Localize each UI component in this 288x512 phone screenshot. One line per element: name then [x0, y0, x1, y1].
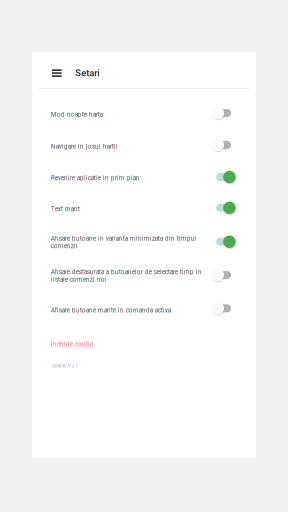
button[interactable]: Text marit	[32, 192, 256, 223]
button[interactable]: Afisare desfasurata a butoanelor de sele…	[32, 260, 256, 295]
staticText: Text marit	[51, 205, 80, 213]
staticText: Afisare butoane in varianta minimizata d…	[51, 235, 197, 250]
staticText: Navigare in josul hartii	[51, 143, 118, 150]
button[interactable]: Navigare in josul hartii	[32, 130, 256, 161]
button[interactable]: Menu	[32, 63, 75, 83]
staticText: Core v0.0.21	[52, 363, 78, 369]
staticText: Afisare desfasurata a butoanelor de sele…	[51, 268, 202, 283]
button[interactable]: Inchide contul	[32, 338, 256, 351]
staticText: Revenire aplicatie in prim plan	[51, 174, 140, 182]
staticText: Afisare butoane marite in comanda activa	[51, 307, 171, 314]
staticText: Inchide contul	[51, 341, 94, 348]
button[interactable]: Afisare butoane in varianta minimizata d…	[32, 223, 256, 260]
staticText: Setari	[75, 68, 99, 78]
staticText: Mod noapte harta	[51, 111, 103, 118]
button[interactable]: Afisare butoane marite in comanda activa	[32, 295, 256, 326]
button[interactable]: Mod noapte harta	[32, 98, 256, 130]
button[interactable]: Revenire aplicatie in prim plan	[32, 161, 256, 192]
